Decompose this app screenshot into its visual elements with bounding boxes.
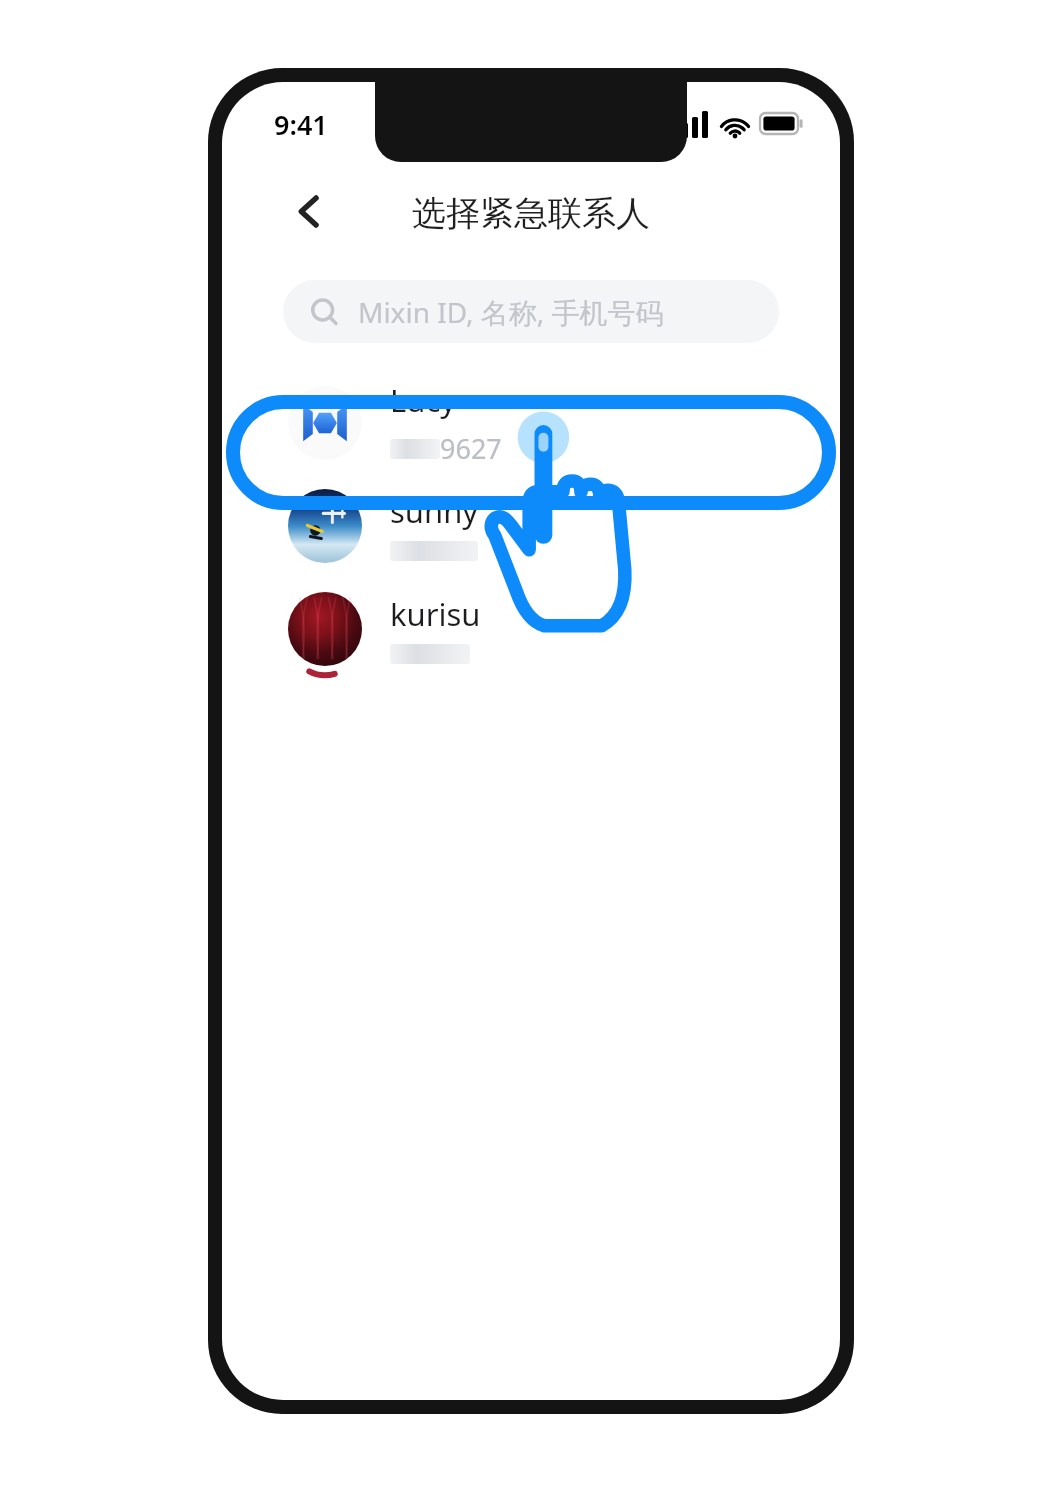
button[interactable]: sunny (222, 474, 840, 577)
button[interactable]: Lucy (222, 371, 840, 474)
staticText: sunny (390, 490, 479, 532)
staticText: Lucy (390, 379, 457, 421)
staticText: 9627 (440, 430, 502, 467)
staticText: Mixin ID, 名称, 手机号码 (358, 293, 664, 331)
button[interactable]: Mixin ID, 名称, 手机号码 (283, 280, 779, 343)
staticText: 选择紧急联系人 (412, 192, 650, 235)
staticText: 9:41 (274, 106, 328, 143)
button[interactable]: Back (278, 180, 340, 242)
staticText: kurisu (390, 593, 481, 635)
button[interactable]: kurisu (222, 577, 840, 680)
